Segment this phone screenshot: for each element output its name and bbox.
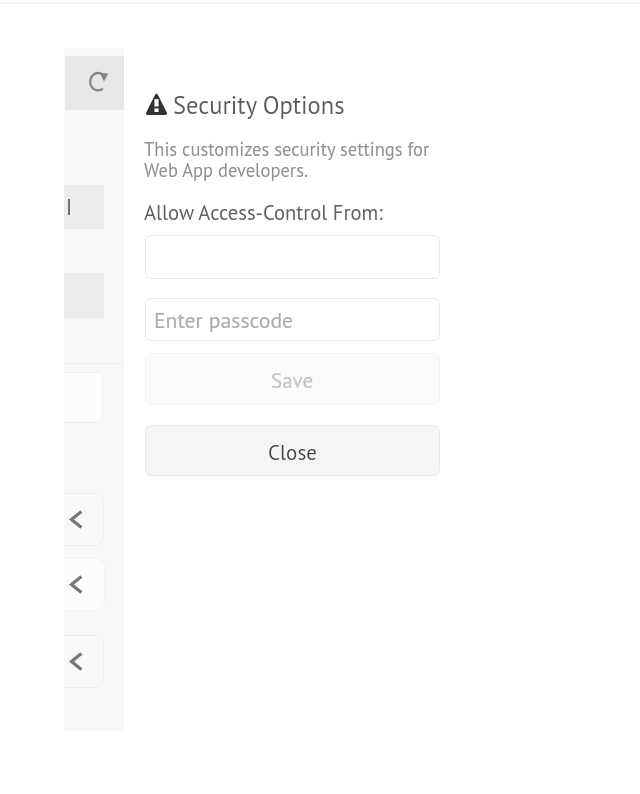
staticText: Security Options [173, 89, 345, 121]
button[interactable]: Allow Access-Control From [145, 235, 440, 279]
button[interactable]: Save [145, 353, 440, 405]
button[interactable]: Enter passcode [145, 298, 440, 341]
other: Warning [145, 92, 168, 115]
staticText: Enter passcode [154, 306, 294, 334]
staticText: Close [268, 439, 317, 466]
button[interactable]: Back [64, 493, 104, 546]
button[interactable]: Back [64, 635, 104, 688]
button[interactable]: Refresh [65, 56, 124, 110]
staticText: This customizes security settings for We… [144, 137, 430, 182]
button[interactable]: Close [145, 425, 440, 476]
staticText: Save [271, 367, 314, 394]
button[interactable]: Back [64, 558, 105, 611]
staticText: Allow Access-Control From: [144, 199, 383, 226]
